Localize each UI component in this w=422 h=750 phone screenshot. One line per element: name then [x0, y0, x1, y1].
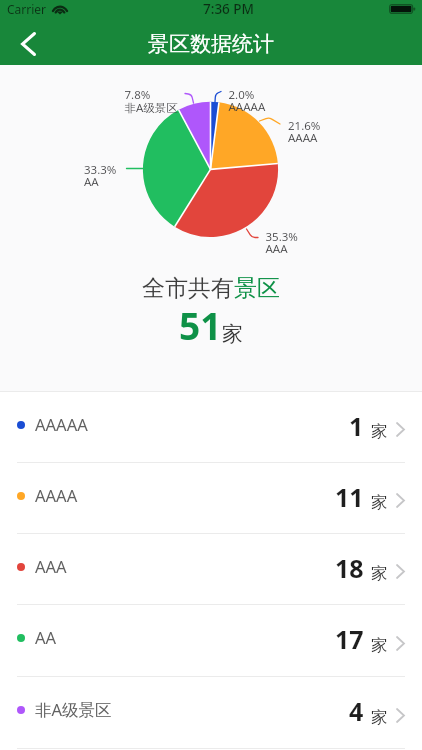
- staticText: Carrier: [7, 1, 47, 17]
- staticText: 4: [349, 694, 364, 728]
- staticText: 景区数据统计: [148, 31, 274, 57]
- staticText: AAAAA: [35, 413, 88, 435]
- staticText: 家: [371, 707, 388, 728]
- staticText: 家: [371, 635, 388, 656]
- staticText: 家: [371, 492, 388, 513]
- button[interactable]: AAAA: [0, 463, 422, 534]
- staticText: 家: [371, 563, 388, 584]
- staticText: AAAA: [35, 484, 78, 506]
- button[interactable]: Back: [0, 22, 50, 65]
- staticText: 7:36 PM: [203, 0, 254, 18]
- staticText: 家: [222, 321, 243, 347]
- staticText: 家: [371, 421, 388, 442]
- staticText: 51: [179, 300, 222, 350]
- staticText: 17: [335, 622, 364, 656]
- staticText: 18: [335, 551, 364, 585]
- button[interactable]: 非A级景区: [0, 677, 422, 749]
- button[interactable]: AAA: [0, 534, 422, 605]
- staticText: AAA: [35, 555, 67, 577]
- button[interactable]: AAAAA: [0, 392, 422, 463]
- staticText: 1: [349, 409, 364, 443]
- staticText: 非A级景区: [35, 698, 112, 721]
- staticText: 11: [335, 480, 364, 514]
- staticText: AA: [35, 626, 57, 648]
- button[interactable]: AA: [0, 605, 422, 677]
- staticText: 全市共有景区: [142, 274, 280, 303]
